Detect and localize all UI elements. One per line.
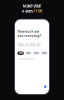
staticText: USD 20,000.00 [17, 43, 40, 47]
staticText: How much are [17, 30, 39, 33]
button[interactable]: $250k [41, 51, 48, 55]
staticText: free [34, 9, 42, 13]
staticText: $100k [33, 52, 38, 54]
staticText: Make your [22, 3, 41, 8]
button[interactable]: $20k [17, 51, 24, 55]
button[interactable]: $100k [32, 51, 39, 55]
button[interactable]: $50k [25, 51, 31, 55]
staticText: $50k [26, 52, 30, 54]
button[interactable]: Continue [44, 85, 46, 88]
staticText: $250k [42, 52, 47, 54]
staticText: Available balance [17, 57, 34, 60]
staticText: $20k [19, 52, 23, 54]
staticText: trades [22, 9, 33, 13]
staticText: you investing? [17, 34, 41, 38]
